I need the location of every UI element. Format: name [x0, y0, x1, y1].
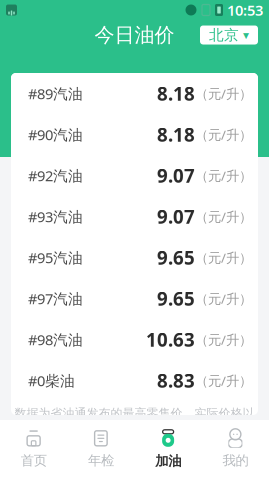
staticText: （元/升）	[195, 290, 252, 307]
staticText: 8.18	[157, 81, 195, 106]
staticText: 9.65	[157, 286, 195, 311]
staticText: 10:53	[227, 0, 263, 20]
staticText: 我的	[222, 452, 248, 469]
staticText: #95汽油	[28, 248, 83, 267]
staticText: 10.63	[146, 327, 195, 352]
button[interactable]: #95汽油	[11, 237, 258, 278]
staticText: （元/升）	[195, 126, 252, 143]
button[interactable]: #98汽油	[11, 319, 258, 360]
staticText: #92汽油	[28, 166, 83, 185]
staticText: 8.83	[157, 368, 195, 393]
button[interactable]: 北京	[200, 25, 258, 44]
button[interactable]: 首页	[0, 420, 67, 478]
button[interactable]: #97汽油	[11, 278, 258, 319]
staticText: （元/升）	[195, 249, 252, 266]
staticText: （元/升）	[195, 208, 252, 225]
staticText: （元/升）	[195, 167, 252, 184]
button[interactable]: 我的	[202, 420, 269, 478]
button[interactable]: 加油	[134, 420, 202, 478]
button[interactable]: #93汽油	[11, 196, 258, 237]
staticText: （元/升）	[195, 372, 252, 389]
staticText: （元/升）	[195, 85, 252, 102]
button[interactable]: #92汽油	[11, 155, 258, 196]
staticText: 9.65	[157, 245, 195, 270]
staticText: #0柴油	[28, 371, 75, 390]
staticText: #90汽油	[28, 125, 83, 144]
staticText: 首页	[21, 452, 47, 469]
staticText: #89汽油	[28, 84, 83, 103]
button[interactable]: #90汽油	[11, 114, 258, 155]
staticText: 年检	[88, 452, 114, 469]
staticText: #98汽油	[28, 330, 83, 349]
staticText: 加油	[155, 453, 181, 469]
button[interactable]: #89汽油	[11, 73, 258, 114]
staticText: 9.07	[157, 163, 195, 188]
staticText: #93汽油	[28, 207, 83, 226]
staticText: #97汽油	[28, 289, 83, 308]
staticText: 今日油价	[94, 23, 174, 47]
staticText: 8.18	[157, 122, 195, 147]
staticText: ▾	[243, 28, 249, 42]
staticText: 北京	[209, 26, 239, 44]
button[interactable]: 年检	[67, 420, 134, 478]
staticText: 9.07	[157, 204, 195, 229]
staticText: 数据为省油通发布的最高零售价，实际价格以当地加油站	[14, 406, 254, 435]
staticText: （元/升）	[195, 331, 252, 348]
button[interactable]: #0柴油	[11, 360, 258, 401]
